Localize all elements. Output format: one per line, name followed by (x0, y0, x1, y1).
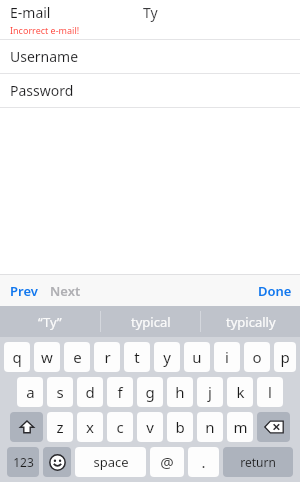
button[interactable]: z (47, 412, 73, 442)
button[interactable]: typical (101, 306, 200, 337)
button[interactable]: 123 (7, 447, 39, 477)
button[interactable]: b (167, 412, 193, 442)
button[interactable]: @ (150, 447, 184, 477)
staticText: @ (160, 452, 174, 472)
button[interactable]: q (4, 342, 30, 372)
staticText: x (86, 417, 94, 437)
staticText: typically (226, 313, 276, 331)
button[interactable]: Prev (10, 282, 38, 300)
staticText: w (41, 347, 53, 367)
staticText: y (163, 347, 171, 367)
staticText: Ty (143, 3, 158, 22)
staticText: l (268, 382, 272, 402)
staticText: space (93, 453, 129, 471)
button[interactable]: h (167, 377, 193, 407)
button[interactable]: E-mail (0, 0, 300, 24)
staticText: r (104, 347, 111, 367)
button[interactable]: . (188, 447, 219, 477)
staticText: Done (258, 282, 292, 300)
staticText: n (205, 417, 215, 437)
staticText: Next (50, 282, 81, 300)
button[interactable]: n (197, 412, 223, 442)
staticText: i (225, 347, 229, 367)
button[interactable]: Done (258, 282, 292, 300)
staticText: E-mail (10, 3, 51, 22)
staticText: u (192, 347, 202, 367)
button[interactable]: f (107, 377, 133, 407)
staticText: Prev (10, 282, 38, 300)
staticText: v (146, 417, 154, 437)
staticText: typical (131, 313, 171, 331)
button[interactable]: a (17, 377, 43, 407)
button[interactable]: k (227, 377, 253, 407)
button[interactable]: t (124, 342, 150, 372)
staticText: Username (10, 47, 79, 66)
button[interactable]: c (107, 412, 133, 442)
button[interactable]: “Ty” (0, 306, 100, 337)
button[interactable]: space (75, 447, 146, 477)
button[interactable]: y (154, 342, 180, 372)
staticText: “Ty” (38, 313, 62, 331)
staticText: a (26, 382, 35, 402)
staticText: e (73, 347, 82, 367)
button[interactable]: u (184, 342, 210, 372)
staticText: z (56, 417, 64, 437)
staticText: s (56, 382, 64, 402)
button[interactable]: Backspace (257, 412, 290, 442)
button[interactable]: Next (50, 282, 81, 300)
button[interactable]: i (214, 342, 240, 372)
button[interactable]: Password (0, 74, 300, 107)
button[interactable]: return (223, 447, 293, 477)
staticText: q (12, 347, 22, 367)
staticText: j (208, 382, 212, 402)
staticText: c (116, 417, 124, 437)
button[interactable]: Emoji (43, 447, 71, 477)
staticText: h (175, 382, 185, 402)
staticText: f (117, 382, 123, 402)
button[interactable]: m (227, 412, 253, 442)
staticText: t (134, 347, 140, 367)
button[interactable]: p (274, 342, 296, 372)
staticText: p (280, 347, 290, 367)
staticText: b (175, 417, 185, 437)
staticText: Incorrect e-mail! (10, 24, 80, 36)
button[interactable]: e (64, 342, 90, 372)
staticText: d (85, 382, 95, 402)
staticText: m (233, 417, 248, 437)
button[interactable]: s (47, 377, 73, 407)
staticText: g (145, 382, 155, 402)
staticText: 123 (13, 454, 34, 470)
button[interactable]: j (197, 377, 223, 407)
button[interactable]: x (77, 412, 103, 442)
button[interactable]: d (77, 377, 103, 407)
staticText: Password (10, 81, 74, 100)
staticText: return (240, 454, 276, 470)
button[interactable]: g (137, 377, 163, 407)
button[interactable]: typically (201, 306, 300, 337)
button[interactable]: Shift (10, 412, 43, 442)
button[interactable]: r (94, 342, 120, 372)
button[interactable]: o (244, 342, 270, 372)
staticText: . (201, 452, 206, 472)
button[interactable]: v (137, 412, 163, 442)
staticText: o (252, 347, 262, 367)
button[interactable]: Username (0, 40, 300, 73)
button[interactable]: l (257, 377, 283, 407)
staticText: k (236, 382, 245, 402)
button[interactable]: w (34, 342, 60, 372)
